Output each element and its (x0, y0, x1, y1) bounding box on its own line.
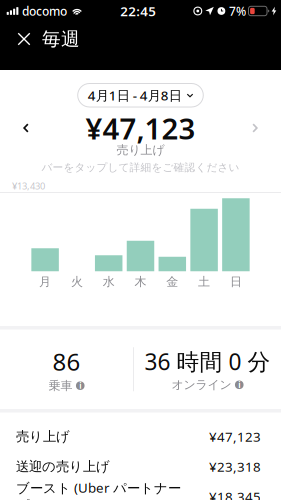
staticText: 36 時間 0 分 (144, 346, 270, 376)
staticText: 水 (103, 274, 115, 289)
staticText: ¥23,318 (209, 458, 261, 475)
staticText: 22:45 (120, 2, 156, 20)
staticText: 4月1日 - 4月8日 (88, 86, 182, 104)
staticText: docomo (22, 3, 67, 19)
staticText: ¥18,345 (209, 488, 261, 500)
staticText: オンライン (171, 377, 231, 392)
staticText: 月 (39, 274, 51, 289)
staticText: 日 (230, 274, 242, 289)
staticText: 乗車 (48, 378, 72, 393)
button[interactable]: 前の週 (14, 116, 38, 140)
staticText: ¥47,123 (209, 428, 261, 445)
button[interactable]: 送迎の売り上げ (0, 451, 281, 481)
staticText: 木 (134, 274, 146, 289)
button[interactable]: 売り上げ (0, 421, 281, 451)
staticText: ¥13,430 (12, 180, 45, 192)
button[interactable]: ブースト (Uber パートナー プロモーシ… (0, 481, 281, 500)
staticText: バーをタップして詳細をご確認ください (41, 161, 239, 174)
staticText: 土 (198, 274, 210, 289)
staticText: 毎週 (42, 27, 80, 50)
button[interactable]: 4月1日 - 4月8日 (78, 83, 203, 107)
staticText: i (238, 379, 240, 390)
staticText: 86 (52, 345, 80, 377)
staticText: 火 (71, 274, 83, 289)
staticText: ブースト (Uber パートナー プロモーシ… (16, 479, 181, 500)
staticText: 金 (166, 274, 178, 289)
staticText: 送迎の売り上げ (16, 458, 110, 475)
staticText: 7% (229, 3, 246, 19)
staticText: 売り上げ (16, 428, 70, 445)
staticText: ¥47,123 (85, 108, 195, 147)
button[interactable]: 閉じる (9, 24, 39, 54)
button[interactable]: 次の週 (243, 116, 267, 140)
staticText: 売り上げ (116, 143, 164, 157)
staticText: i (79, 380, 81, 391)
